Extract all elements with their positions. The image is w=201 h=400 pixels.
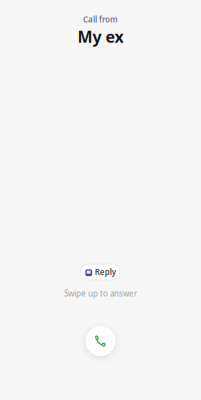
staticText: Call from: [83, 14, 118, 25]
staticText: My ex: [77, 26, 123, 47]
button[interactable]: Reply: [81, 264, 120, 280]
staticText: Swipe up to answer: [64, 288, 137, 299]
button[interactable]: Answer call: [85, 326, 115, 356]
staticText: Reply: [95, 267, 116, 277]
